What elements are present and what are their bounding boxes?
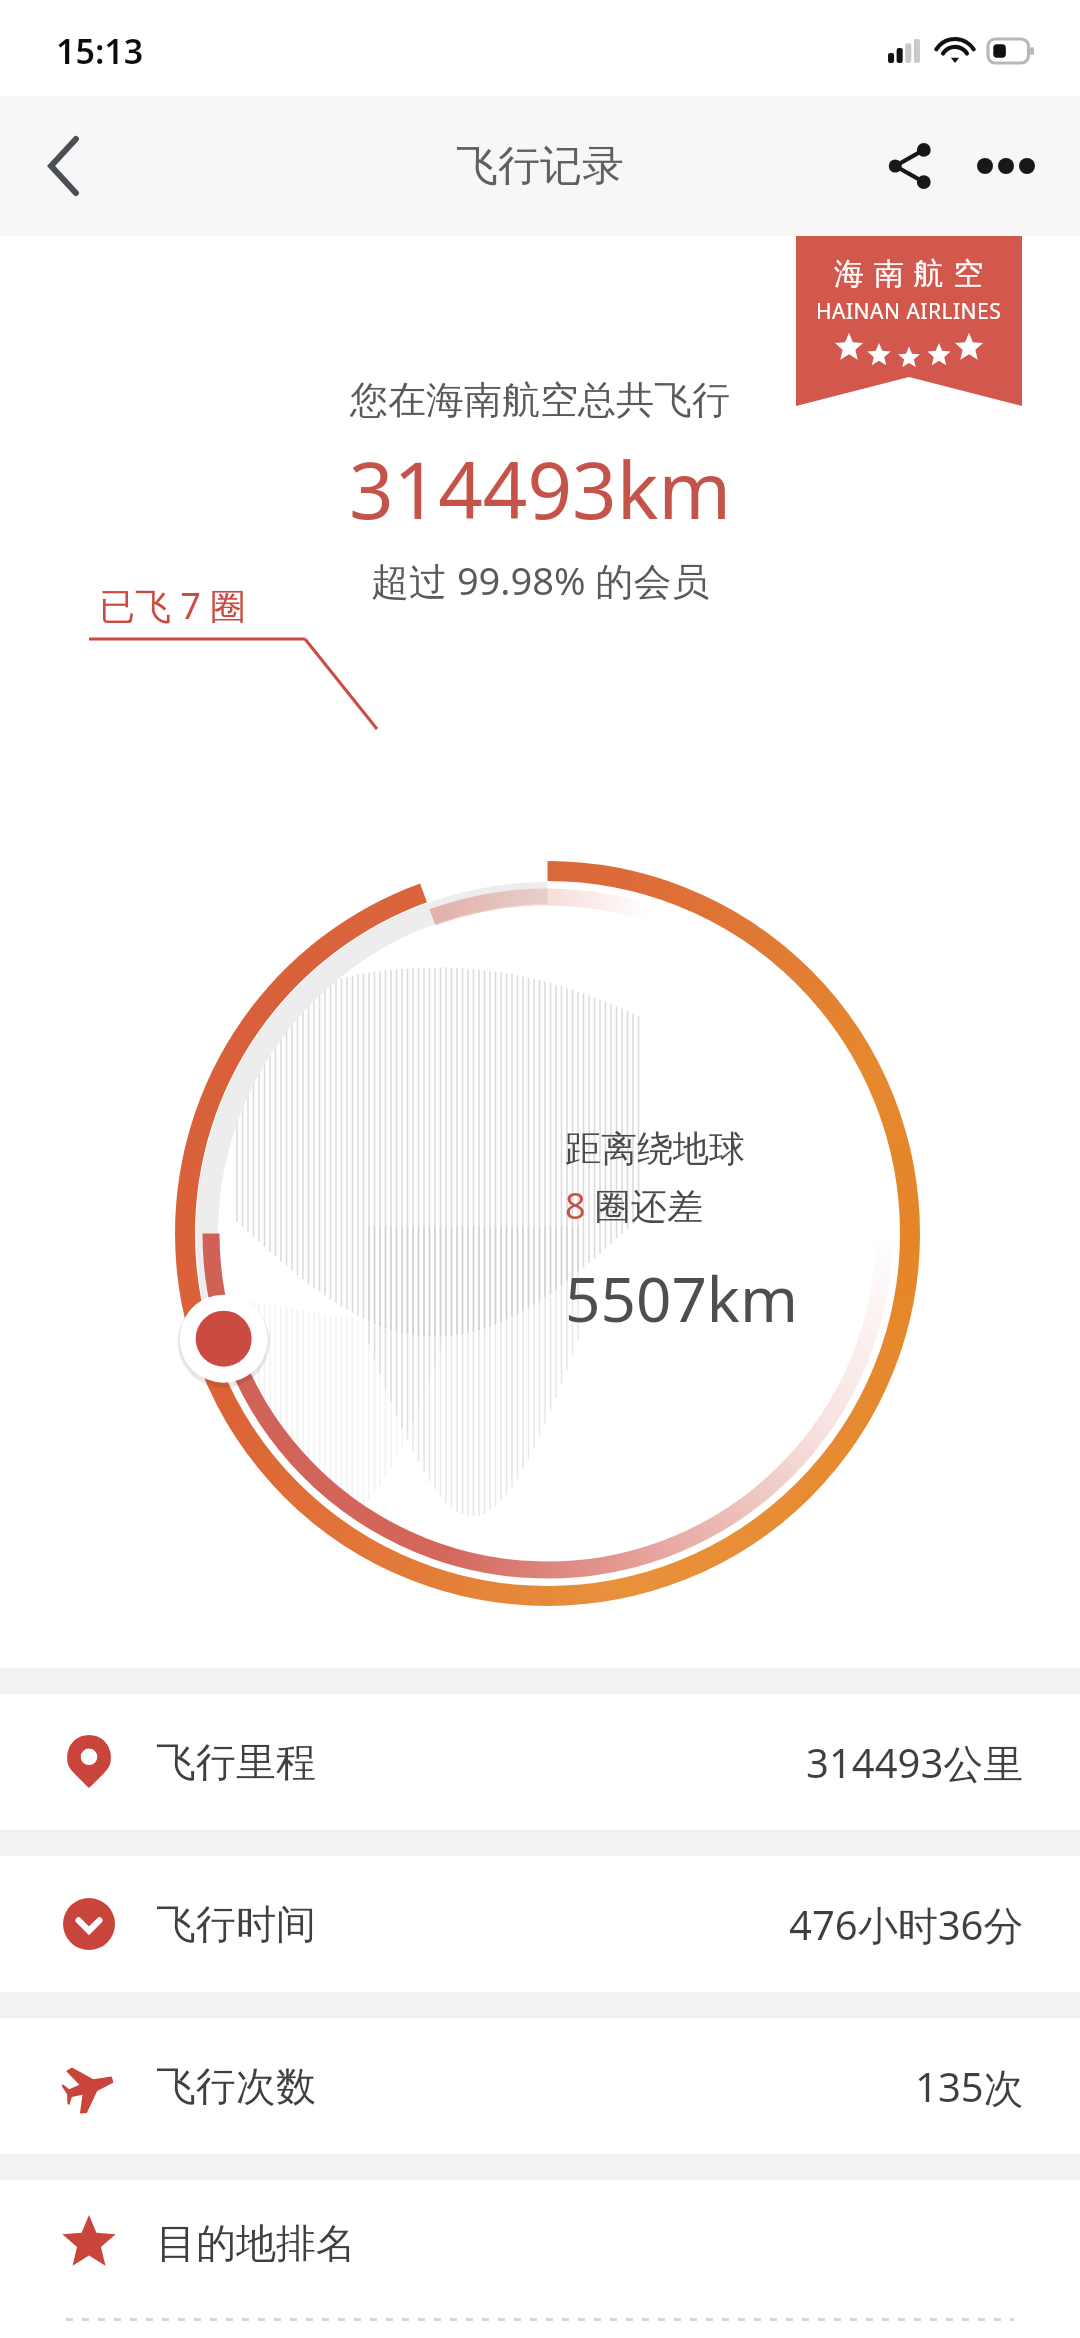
staticText: 超过 99.98% 的会员 <box>371 554 710 606</box>
staticText: 目的地排名 <box>156 2218 356 2268</box>
staticText: 飞行次数 <box>156 2061 316 2111</box>
staticText: 飞行里程 <box>156 1737 316 1787</box>
button[interactable]: 飞行里程 <box>0 1694 1080 1830</box>
staticText: 距离绕地球 <box>565 1126 745 1171</box>
staticText: 15:13 <box>56 28 144 74</box>
staticText: 314493公里 <box>806 1735 1024 1790</box>
staticText: 已飞 7 圈 <box>99 581 247 630</box>
button[interactable]: 飞行次数 <box>0 2018 1080 2154</box>
button[interactable]: Back <box>18 120 110 212</box>
staticText: 5507km <box>565 1256 798 1340</box>
button[interactable]: More options <box>958 118 1054 214</box>
staticText: 飞行时间 <box>156 1899 316 1949</box>
staticText: HAINAN AIRLINES <box>816 297 1002 326</box>
staticText: 476小时36分 <box>789 1897 1024 1952</box>
staticText: 您在海南航空总共飞行 <box>350 376 730 424</box>
staticText: 314493km <box>349 436 732 542</box>
staticText: 8 圈还差 <box>565 1181 703 1230</box>
staticText: 135次 <box>915 2059 1024 2114</box>
button[interactable]: Share <box>862 118 958 214</box>
staticText: 飞行记录 <box>456 140 624 193</box>
staticText: 海 南 航 空 <box>834 252 985 293</box>
button[interactable]: 目的地排名 <box>0 2180 1080 2306</box>
button[interactable]: 飞行时间 <box>0 1856 1080 1992</box>
